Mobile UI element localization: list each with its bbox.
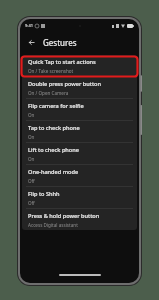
staticText: Flip to Shhh	[28, 190, 60, 198]
button[interactable]: Flip camera for selfie	[22, 99, 137, 120]
button[interactable]: Tap to check phone	[22, 121, 137, 142]
button[interactable]: Press & hold power button	[22, 209, 137, 230]
staticText: One-handed mode	[28, 168, 79, 176]
staticText: Quick Tap to start actions	[28, 58, 96, 66]
button[interactable]: Double press power button	[22, 77, 137, 98]
staticText: On / Take screenshot	[28, 68, 74, 74]
staticText: Double press power button	[28, 80, 101, 88]
button[interactable]: Flip to Shhh	[22, 187, 137, 208]
button[interactable]: One-handed mode	[22, 165, 137, 186]
staticText: On	[28, 134, 35, 140]
button[interactable]: Back	[24, 35, 39, 50]
staticText: Lift to check phone	[28, 146, 80, 154]
staticText: Off	[28, 200, 35, 206]
staticText: Gestures	[43, 37, 77, 48]
button[interactable]: Quick Tap to start actions	[22, 55, 137, 76]
staticText: Access Digital assistant	[28, 222, 78, 228]
staticText: On / Open Camera	[28, 90, 69, 96]
staticText: Press & hold power button	[28, 212, 100, 220]
button[interactable]: Lift to check phone	[22, 143, 137, 164]
staticText: Off	[28, 178, 35, 184]
staticText: On	[28, 112, 35, 118]
staticText: Flip camera for selfie	[28, 102, 84, 110]
staticText: Tap to check phone	[28, 124, 80, 132]
staticText: On	[28, 156, 35, 162]
staticText: 9:41	[25, 23, 33, 28]
